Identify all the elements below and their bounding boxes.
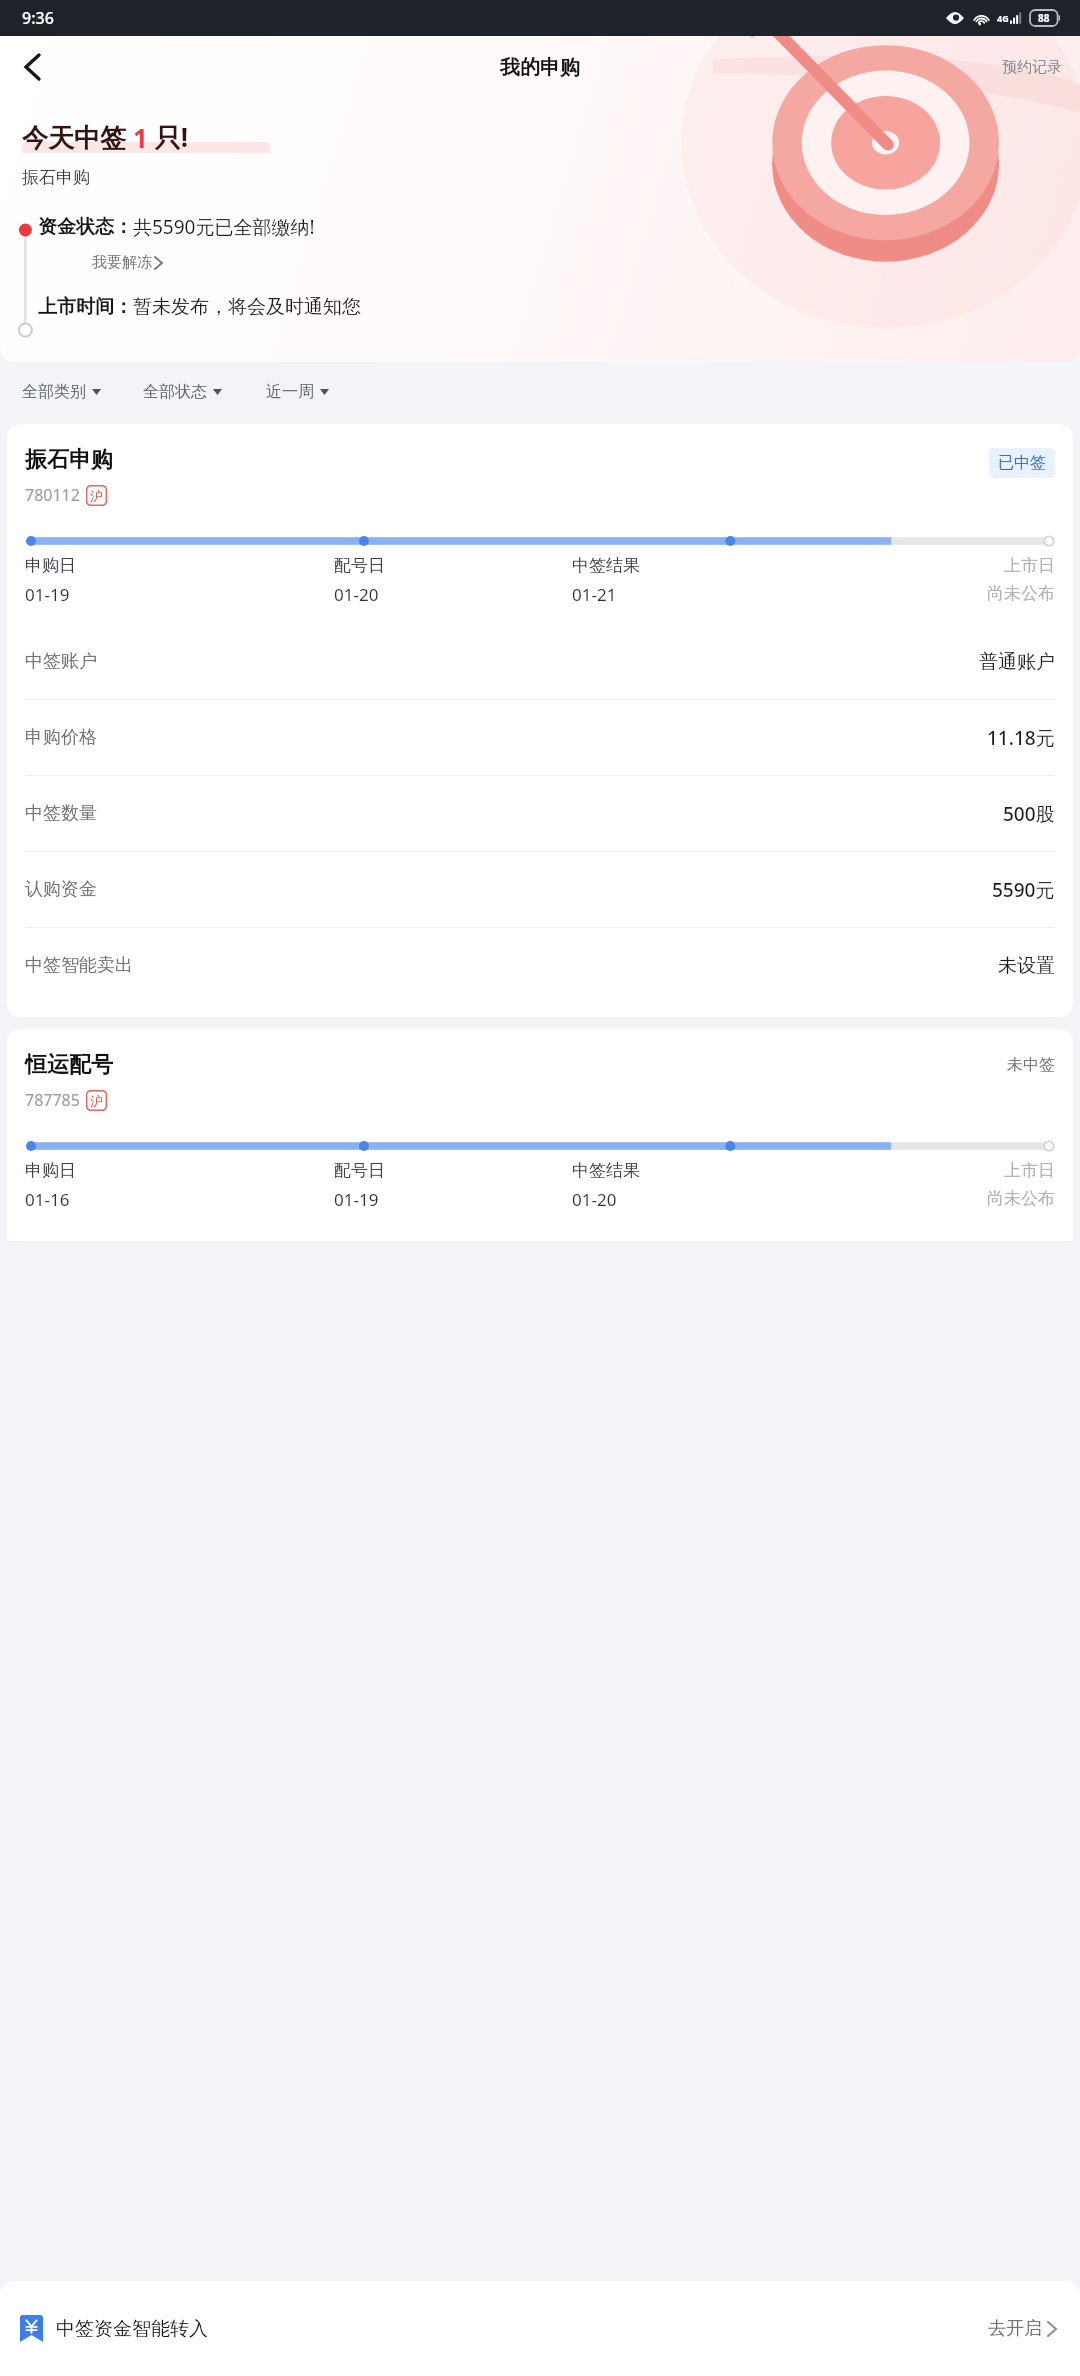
staticText: 4G [997, 12, 1009, 24]
staticText: 只! [148, 119, 189, 155]
staticText: 已中签 [998, 453, 1046, 473]
button[interactable]: 返回 [8, 43, 56, 91]
staticText: 沪 [90, 488, 103, 504]
staticText: 共5590元已全部缴纳! [133, 214, 315, 240]
staticText: 上市时间： [38, 295, 133, 319]
staticText: 普通账户 [979, 650, 1055, 674]
staticText: 中签结果 [572, 555, 640, 576]
staticText: 上市日 [1004, 555, 1055, 576]
staticText: 振石申购 [22, 167, 90, 188]
staticText: 未中签 [1007, 1055, 1055, 1075]
button[interactable]: 振石申购 [7, 424, 1073, 1017]
staticText: 全部类别 [22, 382, 86, 402]
staticText: 去开启 [988, 2317, 1042, 2340]
staticText: 中签账户 [25, 650, 97, 673]
staticText: 01-19 [334, 1188, 379, 1211]
staticText: 上市日 [1004, 1160, 1055, 1181]
staticText: 01-16 [25, 1188, 70, 1211]
staticText: 我的申购 [500, 55, 580, 80]
staticText: 恒运配号 [25, 1051, 113, 1079]
staticText: 认购资金 [25, 878, 97, 901]
staticText: 88 [1038, 11, 1050, 25]
staticText: 振石申购 [25, 446, 113, 474]
staticText: 中签资金智能转入 [56, 2317, 208, 2341]
button[interactable]: 去开启 [984, 2311, 1060, 2346]
button[interactable]: 我要解冻 [90, 250, 164, 275]
staticText: 申购价格 [25, 726, 97, 749]
staticText: 配号日 [334, 1160, 385, 1181]
staticText: 尚未公布 [987, 583, 1055, 604]
staticText: 中签数量 [25, 802, 97, 825]
staticText: 01-21 [572, 583, 617, 606]
staticText: 01-20 [334, 583, 379, 606]
button[interactable]: 恒运配号 [7, 1029, 1073, 1241]
staticText: 沪 [90, 1093, 103, 1109]
staticText: 申购日 [25, 1160, 76, 1181]
button[interactable]: 全部类别 [22, 377, 101, 407]
staticText: 中签结果 [572, 1160, 640, 1181]
staticText: 尚未公布 [987, 1188, 1055, 1209]
staticText: 9:36 [22, 7, 54, 29]
staticText: 01-20 [572, 1188, 617, 1211]
staticText: 近一周 [266, 382, 314, 402]
staticText: 申购日 [25, 555, 76, 576]
staticText: 配号日 [334, 555, 385, 576]
staticText: 787785 [25, 1089, 80, 1111]
staticText: 5590元 [992, 877, 1055, 903]
button[interactable]: 已中签 [989, 448, 1055, 478]
staticText: 未设置 [998, 954, 1055, 978]
staticText: 我要解冻 [92, 253, 152, 272]
staticText: 01-19 [25, 583, 70, 606]
staticText: 1 [133, 120, 148, 155]
button[interactable]: 全部状态 [143, 377, 222, 407]
staticText: 今天中签 [22, 119, 133, 155]
staticText: 11.18元 [987, 725, 1055, 751]
staticText: 预约记录 [1002, 58, 1062, 77]
staticText: 全部状态 [143, 382, 207, 402]
button[interactable]: 预约记录 [984, 50, 1080, 85]
staticText: 780112 [25, 484, 80, 506]
staticText: 中签智能卖出 [25, 954, 133, 977]
staticText: 500股 [1003, 801, 1055, 827]
staticText: 暂未发布，将会及时通知您 [133, 295, 361, 319]
staticText: 资金状态： [38, 215, 133, 239]
button[interactable]: 近一周 [266, 377, 329, 407]
